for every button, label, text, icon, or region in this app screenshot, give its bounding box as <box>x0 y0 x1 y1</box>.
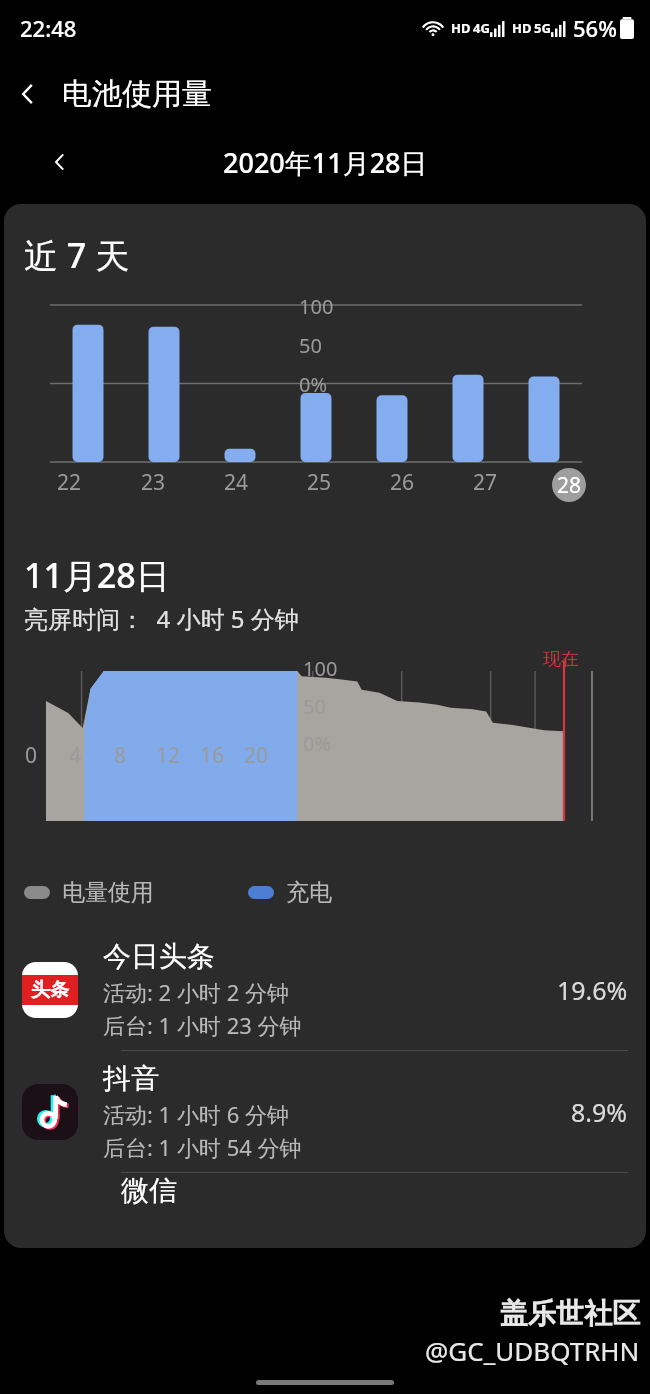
staticText: 近 7 天 <box>24 232 130 278</box>
staticText: HD <box>451 19 471 37</box>
staticText: 电池使用量 <box>62 75 212 113</box>
staticText: 24 <box>224 468 249 497</box>
staticText: 0 <box>25 741 38 770</box>
staticText: 微信 <box>121 1173 177 1208</box>
staticText: 后台: 1 小时 23 分钟 <box>103 1010 302 1040</box>
staticText: 后台: 1 小时 54 分钟 <box>103 1132 302 1162</box>
button[interactable]: Previous day <box>36 138 84 186</box>
staticText: 100 <box>303 655 338 682</box>
staticText: 5G <box>534 19 551 37</box>
staticText: 8.9% <box>571 1095 628 1129</box>
staticText: 8 <box>114 741 127 770</box>
staticText: 电量使用 <box>62 878 154 907</box>
staticText: 0% <box>303 730 332 757</box>
staticText: 50 <box>299 332 322 359</box>
staticText: 2020年11月28日 <box>223 144 428 181</box>
staticText: 亮屏时间： 4 小时 5 分钟 <box>24 602 299 635</box>
staticText: 22 <box>57 468 82 497</box>
staticText: 20 <box>244 741 269 770</box>
staticText: 27 <box>473 468 498 497</box>
staticText: 现在 <box>543 648 579 671</box>
staticText: 今日头条 <box>103 939 215 974</box>
staticText: 26 <box>390 468 415 497</box>
staticText: 11月28日 <box>24 552 170 598</box>
staticText: 盖乐世社区 <box>500 1296 640 1331</box>
staticText: 19.6% <box>557 973 628 1007</box>
staticText: 23 <box>141 468 166 497</box>
button[interactable]: Back <box>0 66 56 122</box>
staticText: 22:48 <box>20 13 77 43</box>
staticText: 头条 <box>31 978 69 1002</box>
button[interactable]: 头条 <box>4 929 646 1050</box>
staticText: @GC_UDBQTRHN <box>425 1333 640 1368</box>
staticText: 100 <box>299 293 334 320</box>
staticText: 0% <box>299 371 328 398</box>
staticText: 50 <box>303 693 326 720</box>
staticText: 活动: 2 小时 2 分钟 <box>103 977 289 1007</box>
button[interactable]: 抖音 <box>4 1051 646 1172</box>
staticText: 抖音 <box>103 1061 159 1096</box>
staticText: 56% <box>573 13 617 43</box>
staticText: 25 <box>307 468 332 497</box>
staticText: 28 <box>557 471 582 500</box>
staticText: 12 <box>156 741 181 770</box>
staticText: 16 <box>200 741 225 770</box>
staticText: 充电 <box>286 878 332 907</box>
staticText: 活动: 1 小时 6 分钟 <box>103 1099 289 1129</box>
staticText: 4 <box>69 741 82 770</box>
staticText: HD <box>512 19 532 37</box>
staticText: 4G <box>473 19 490 37</box>
